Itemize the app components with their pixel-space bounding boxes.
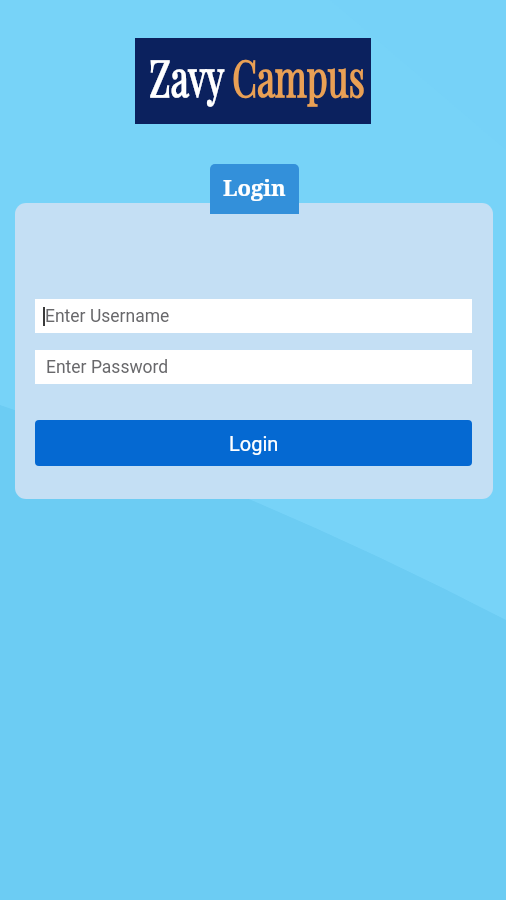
button[interactable]: Enter Password bbox=[35, 350, 472, 384]
button[interactable]: Login bbox=[210, 164, 299, 214]
button[interactable]: Enter Username bbox=[35, 299, 472, 333]
staticText: Login bbox=[223, 172, 286, 202]
staticText: Login bbox=[229, 432, 279, 455]
staticText: Enter Password bbox=[46, 357, 169, 378]
button[interactable]: Login bbox=[35, 420, 472, 466]
button[interactable]: Zavy Campus logo bbox=[135, 38, 371, 124]
staticText: Zavy Campus bbox=[142, 43, 372, 110]
staticText: Enter Username bbox=[45, 306, 170, 327]
